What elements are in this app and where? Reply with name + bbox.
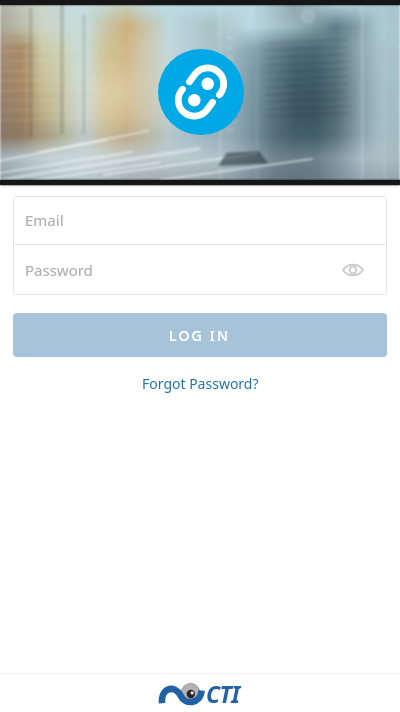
staticText: Email [25,210,64,230]
button[interactable]: Email [13,196,387,244]
staticText: Forgot Password? [142,374,259,393]
button[interactable]: LOG IN [13,313,387,357]
button[interactable]: Show password [340,257,366,283]
button[interactable]: App logo [158,49,244,135]
staticText: LOG IN [169,326,231,345]
staticText: CTI [206,678,240,709]
button[interactable]: Forgot Password? [134,370,267,397]
button[interactable]: Password [13,245,387,295]
staticText: Password [25,260,93,280]
